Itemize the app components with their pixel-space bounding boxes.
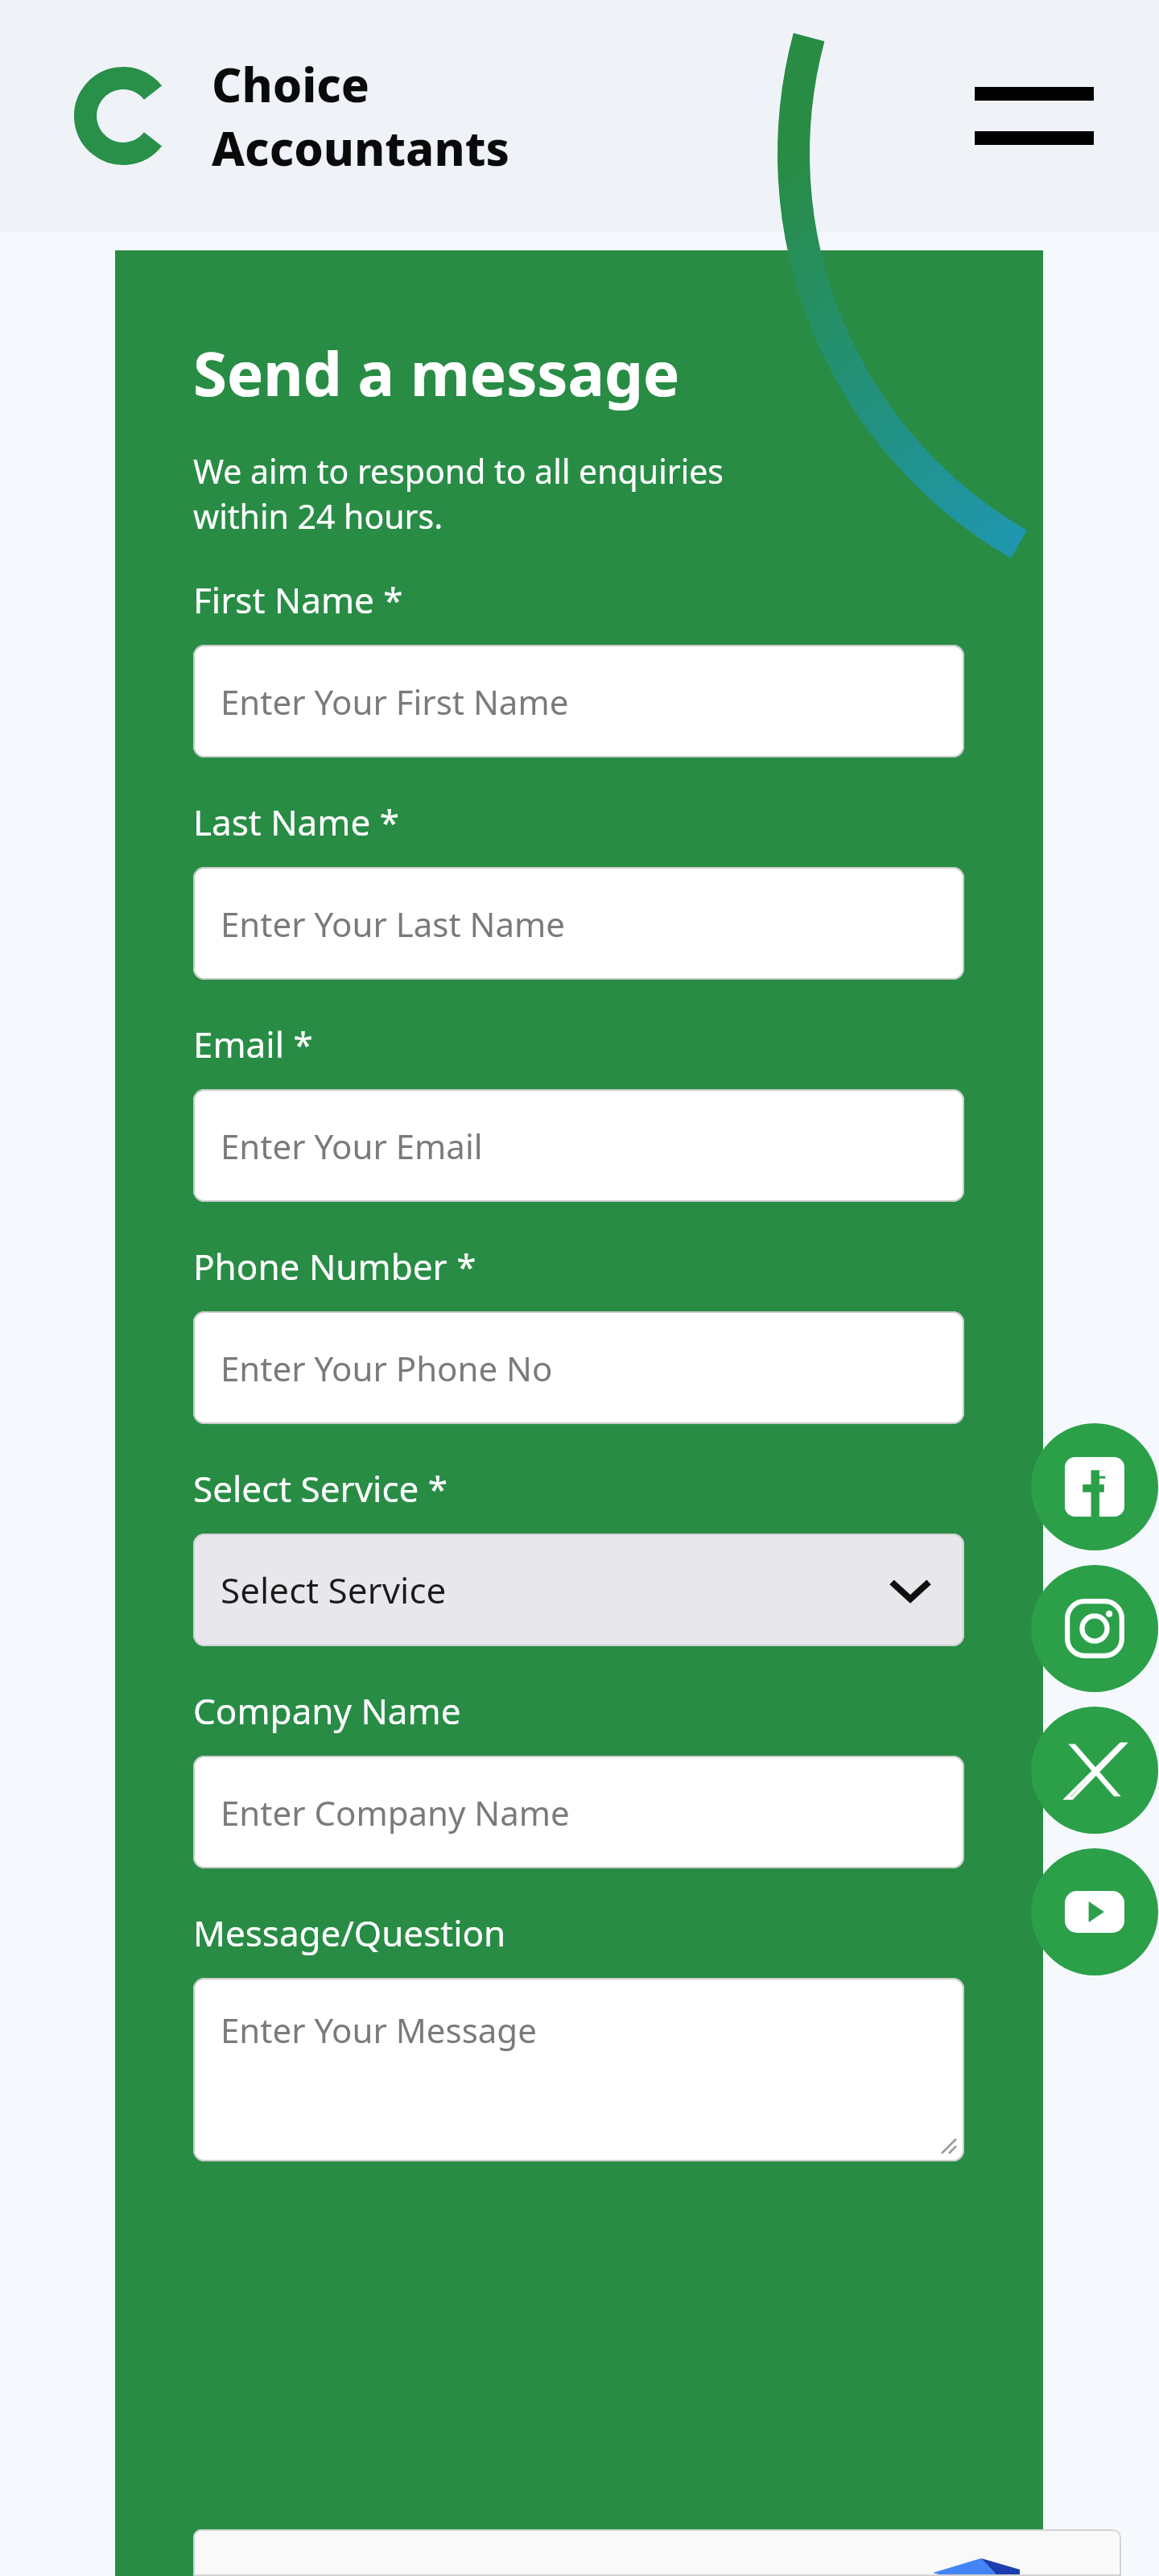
button[interactable]: Open menu: [971, 72, 1096, 160]
staticText: Enter Your Phone No: [221, 1345, 553, 1391]
staticText: Enter Your Message: [221, 2007, 537, 2053]
button[interactable]: Enter Your Last Name: [193, 867, 964, 980]
staticText: Phone Number *: [193, 1242, 476, 1290]
staticText: Company Name: [193, 1686, 461, 1735]
staticText: Select Service *: [193, 1464, 448, 1513]
staticText: Accountants: [212, 116, 510, 180]
button[interactable]: Select Service: [193, 1534, 964, 1646]
staticText: within 24 hours.: [193, 493, 443, 539]
button[interactable]: Enter Your Email: [193, 1089, 964, 1202]
button[interactable]: Enter Your Message: [193, 1978, 964, 2161]
button[interactable]: Choice: [72, 52, 510, 180]
button[interactable]: Enter Company Name: [193, 1756, 964, 1868]
staticText: First Name *: [193, 576, 403, 624]
staticText: Enter Your First Name: [221, 679, 569, 724]
staticText: Message/Question: [193, 1909, 506, 1957]
button[interactable]: Facebook: [1031, 1423, 1158, 1550]
staticText: Select Service: [221, 1566, 447, 1614]
staticText: Choice: [212, 52, 369, 116]
button[interactable]: Instagram: [1031, 1565, 1158, 1692]
staticText: Enter Company Name: [221, 1790, 570, 1835]
staticText: Enter Your Last Name: [221, 901, 565, 947]
staticText: We aim to respond to all enquiries: [193, 448, 724, 493]
button[interactable]: YouTube: [1031, 1848, 1158, 1975]
staticText: Enter Your Email: [221, 1123, 483, 1169]
button[interactable]: [193, 2529, 1121, 2576]
button[interactable]: X: [1031, 1707, 1158, 1834]
button[interactable]: Enter Your First Name: [193, 645, 964, 758]
button[interactable]: Enter Your Phone No: [193, 1311, 964, 1424]
staticText: Email *: [193, 1020, 313, 1068]
staticText: Send a message: [193, 331, 680, 415]
staticText: Last Name *: [193, 798, 399, 846]
